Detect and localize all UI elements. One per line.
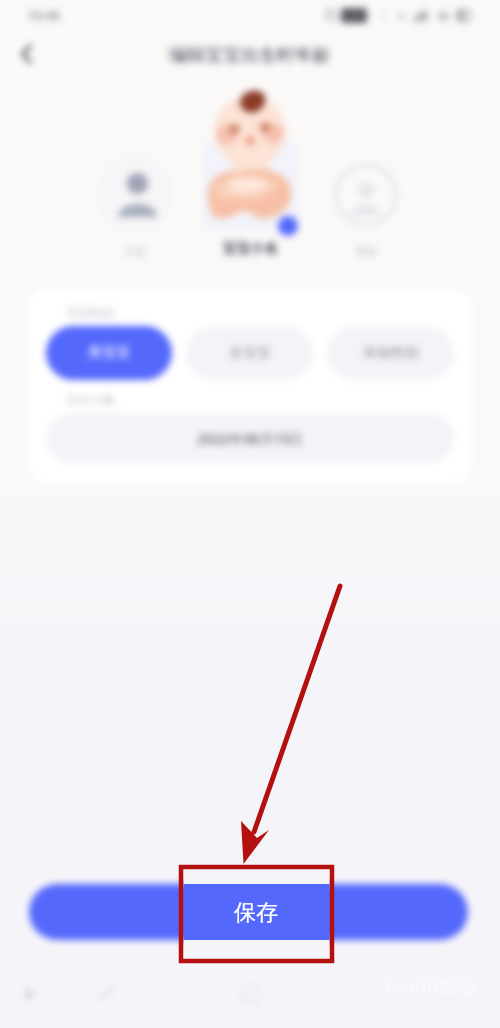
staticText: 编辑宝宝出生时年龄 bbox=[169, 44, 331, 67]
staticText: 女宝宝 bbox=[229, 344, 271, 362]
staticText: 4 bbox=[398, 8, 405, 23]
staticText: 46 bbox=[437, 8, 450, 23]
staticText: 男宝宝 bbox=[88, 344, 130, 362]
staticText: 宝宝性别 bbox=[66, 305, 114, 320]
button[interactable]: Baby 1 bbox=[96, 155, 174, 233]
staticText: 出生日期 bbox=[66, 392, 114, 407]
staticText: 添加 bbox=[355, 244, 377, 258]
button[interactable]: 女宝宝 bbox=[186, 326, 313, 380]
button[interactable]: 未知性别 bbox=[327, 326, 454, 380]
button[interactable]: Selected baby bbox=[200, 88, 300, 230]
staticText: 宝宝小名 bbox=[222, 240, 278, 256]
staticText: 未知性别 bbox=[363, 344, 419, 362]
staticText: 保存 bbox=[234, 899, 278, 927]
button[interactable]: Back bbox=[8, 35, 46, 73]
button[interactable]: Add baby bbox=[328, 157, 404, 233]
staticText: 大宝 bbox=[124, 244, 146, 258]
button[interactable]: 保存 bbox=[29, 884, 468, 940]
button[interactable]: 男宝宝 bbox=[46, 326, 172, 380]
button[interactable]: 2022年08月15日 bbox=[46, 413, 454, 463]
staticText: 保存 bbox=[228, 899, 270, 925]
staticText: 2022年08月15日 bbox=[197, 429, 304, 448]
staticText: 10:46 bbox=[27, 6, 61, 24]
button[interactable]: Back bbox=[13, 978, 45, 1010]
